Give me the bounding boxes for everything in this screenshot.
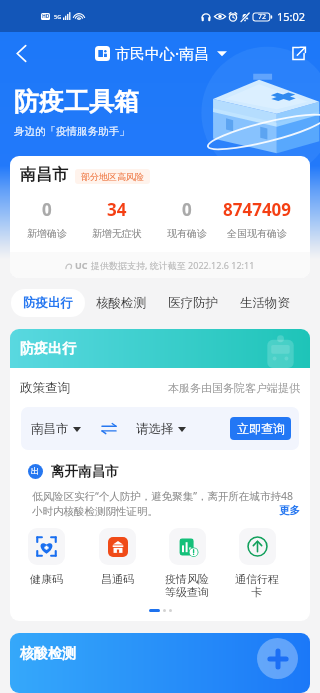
button[interactable]: 南昌市 (31, 421, 81, 437)
button[interactable]: 请选择 (136, 421, 186, 437)
staticText: 15:02 (277, 9, 306, 24)
staticText: 疫情风险 等级查询 (165, 572, 209, 600)
button[interactable]: Back (4, 36, 38, 70)
button[interactable]: 疫情风险 等级查询 (152, 528, 222, 600)
staticText: 8747409 (223, 198, 292, 221)
staticText: 防疫出行 (23, 295, 73, 311)
staticText: 34 (107, 198, 127, 221)
staticText: 核酸检测 (20, 645, 76, 663)
staticText: 新增确诊 (27, 227, 67, 240)
staticText: 医疗防护 (168, 295, 218, 311)
staticText: 核酸检测 (96, 295, 146, 311)
staticText: 通信行程 卡 (235, 572, 279, 600)
staticText: 5G (54, 13, 62, 20)
staticText: 南昌市 (31, 421, 69, 437)
button[interactable]: 医疗防护 (157, 289, 229, 317)
staticText: 立即查询 (237, 421, 285, 436)
staticText: 提供数据支持, 统计截至 2022.12.6 12:11 (91, 259, 255, 271)
staticText: UC (75, 259, 88, 271)
staticText: 0 (42, 198, 52, 221)
staticText: 全国现有确诊 (227, 227, 287, 240)
staticText: 0 (182, 198, 192, 221)
staticText: 南昌市 (20, 165, 68, 185)
staticText: HD (42, 13, 50, 20)
button[interactable]: Add (257, 638, 298, 679)
staticText: 72 (258, 12, 267, 22)
staticText: 防疫出行 (20, 340, 76, 358)
staticText: 低风险区实行“个人防护，避免聚集”，离开所在城市持48小时内核酸检测阴性证明。 (32, 489, 300, 518)
button[interactable]: 生活物资 (229, 289, 301, 317)
button[interactable]: 立即查询 (230, 417, 291, 440)
button[interactable]: 防疫出行 (11, 289, 85, 317)
staticText: 昌通码 (101, 572, 134, 586)
button[interactable]: 健康码 (11, 528, 82, 586)
button[interactable]: 昌通码 (82, 528, 152, 586)
staticText: 离开南昌市 (51, 463, 119, 480)
staticText: 现有确诊 (167, 227, 207, 240)
button[interactable]: 通信行程 卡 (222, 528, 292, 600)
staticText: 本服务由国务院客户端提供 (168, 381, 300, 395)
staticText: 新增无症状 (92, 227, 142, 240)
button[interactable]: 市民中心·南昌 (95, 43, 227, 63)
staticText: 防疫工具箱 (14, 86, 139, 117)
button[interactable]: Share (282, 37, 314, 69)
button[interactable]: 核酸检测 (85, 289, 157, 317)
staticText: 部分地区高风险 (81, 171, 144, 182)
staticText: 市民中心·南昌 (115, 43, 210, 63)
staticText: 出 (31, 466, 40, 477)
staticText: 请选择 (136, 421, 174, 437)
staticText: 政策查询 (20, 380, 70, 396)
staticText: 生活物资 (240, 295, 290, 311)
button[interactable]: 更多 (279, 504, 300, 517)
staticText: 身边的「疫情服务助手」 (14, 125, 130, 138)
staticText: 健康码 (30, 572, 63, 586)
